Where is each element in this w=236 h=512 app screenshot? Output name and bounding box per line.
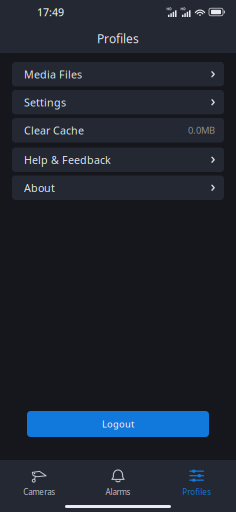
button[interactable]: Clear Cache bbox=[12, 118, 224, 142]
staticText: Alarms bbox=[105, 487, 130, 497]
button[interactable]: Alarms bbox=[79, 461, 157, 500]
staticText: Profiles bbox=[182, 487, 211, 497]
staticText: Cameras bbox=[23, 487, 55, 497]
button[interactable]: Logout bbox=[27, 411, 209, 437]
button[interactable]: Cameras bbox=[0, 461, 79, 500]
button[interactable]: Profiles bbox=[157, 461, 236, 500]
staticText: Media Files bbox=[24, 67, 82, 81]
button[interactable]: About bbox=[12, 175, 224, 200]
staticText: 17:49 bbox=[37, 5, 64, 19]
staticText: About bbox=[24, 181, 55, 195]
staticText: Profiles bbox=[97, 30, 139, 46]
staticText: Settings bbox=[24, 95, 66, 109]
staticText: Clear Cache bbox=[24, 123, 84, 137]
button[interactable]: Media Files bbox=[12, 62, 224, 86]
button[interactable]: Help & Feedback bbox=[12, 147, 224, 172]
staticText: Logout bbox=[102, 418, 134, 430]
staticText: 0.0MB bbox=[188, 124, 215, 136]
button[interactable]: Settings bbox=[12, 90, 224, 114]
staticText: Help & Feedback bbox=[24, 153, 111, 167]
